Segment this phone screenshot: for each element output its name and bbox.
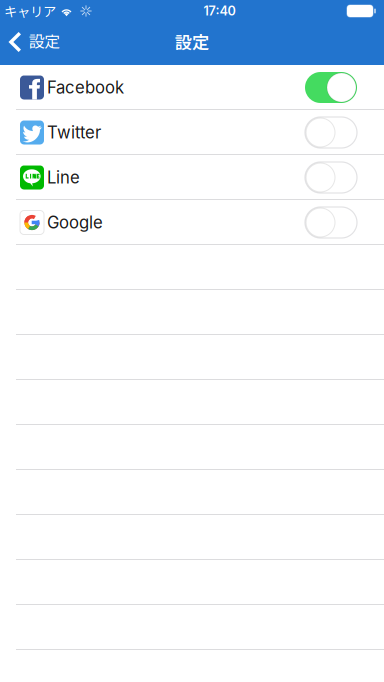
button[interactable]: Twitter <box>0 110 384 155</box>
staticText: キャリア <box>4 1 56 21</box>
staticText: Line <box>47 167 80 188</box>
staticText: 設定 <box>175 29 209 54</box>
staticText: 17:40 <box>203 3 235 19</box>
staticText: Google <box>47 212 103 233</box>
staticText: Twitter <box>47 122 101 143</box>
button[interactable]: Facebook <box>0 65 384 110</box>
button[interactable]: Line <box>0 155 384 200</box>
staticText: 設定 <box>28 29 60 52</box>
staticText: Facebook <box>47 77 124 98</box>
button[interactable]: Google <box>0 200 384 245</box>
button[interactable]: 設定 <box>0 22 70 65</box>
